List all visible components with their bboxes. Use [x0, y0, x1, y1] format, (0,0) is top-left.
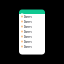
- staticText: Item: [24, 24, 32, 29]
- staticText: Item: [24, 14, 32, 19]
- staticText: Item: [24, 29, 32, 34]
- staticText: Item: [24, 34, 32, 39]
- staticText: Item: [24, 39, 32, 44]
- staticText: Item: [24, 44, 32, 49]
- staticText: Item: [24, 19, 32, 24]
- staticText: Lists: [21, 0, 26, 25]
